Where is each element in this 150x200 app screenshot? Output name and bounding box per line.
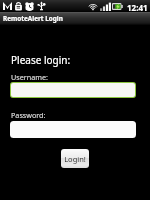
button[interactable]: Username input field xyxy=(11,83,135,97)
staticText: Password: xyxy=(11,110,46,120)
staticText: RemoteAlert Login xyxy=(3,14,63,23)
staticText: Login! xyxy=(61,154,89,164)
staticText: Please login: xyxy=(11,53,71,67)
button[interactable]: Password input field xyxy=(10,121,136,138)
staticText: Username: xyxy=(11,72,48,82)
staticText: 12:41 xyxy=(127,2,148,13)
button[interactable]: Login! xyxy=(61,149,89,168)
